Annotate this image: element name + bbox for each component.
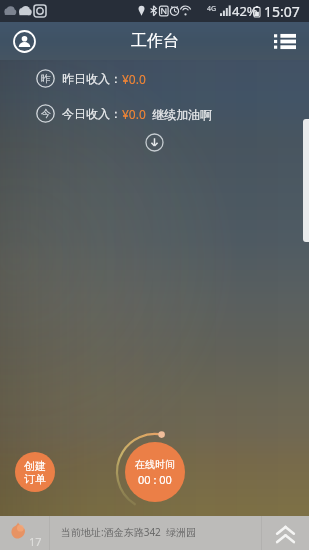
button[interactable]: Menu: [271, 27, 299, 55]
staticText: 当前地址:酒金东路342 绿洲园: [61, 525, 197, 539]
button[interactable]: Expand: [145, 133, 164, 152]
button[interactable]: Heat level: [0, 516, 49, 550]
staticText: 17: [29, 534, 42, 549]
staticText: 工作台: [131, 31, 179, 51]
staticText: 42%: [232, 2, 258, 20]
staticText: 昨: [41, 72, 51, 85]
button[interactable]: 今: [0, 104, 309, 123]
staticText: 继续加油啊: [146, 106, 213, 122]
staticText: 15:07: [264, 2, 300, 21]
staticText: 4G: [207, 4, 217, 14]
button[interactable]: Side panel: [303, 119, 309, 242]
button[interactable]: Expand panel: [262, 516, 309, 550]
staticText: 在线时间: [135, 458, 175, 471]
button[interactable]: 在线时间: [125, 442, 185, 502]
button[interactable]: 昨: [0, 69, 309, 88]
staticText: 00 : 00: [138, 472, 172, 487]
staticText: ¥0.0: [122, 71, 146, 87]
staticText: ¥0.0: [122, 106, 146, 122]
button[interactable]: 创建 订单: [15, 452, 55, 492]
staticText: 今日收入：: [62, 106, 122, 121]
button[interactable]: Profile: [9, 26, 39, 56]
staticText: 昨日收入：: [62, 71, 122, 86]
staticText: 今: [41, 107, 51, 120]
staticText: 创建 订单: [24, 459, 46, 486]
